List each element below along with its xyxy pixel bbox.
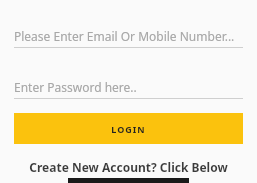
staticText: Enter Password here.. [14, 79, 137, 95]
button[interactable]: Create New Account? Click Below [14, 159, 243, 175]
staticText: Create New Account? Click Below [29, 159, 228, 175]
button[interactable]: Please Enter Email Or Mobile Number... [14, 28, 243, 48]
staticText: LOGIN [111, 123, 146, 135]
button[interactable]: LOGIN [14, 113, 243, 144]
staticText: Please Enter Email Or Mobile Number... [14, 28, 235, 44]
button[interactable]: Enter Password here.. [14, 79, 243, 99]
